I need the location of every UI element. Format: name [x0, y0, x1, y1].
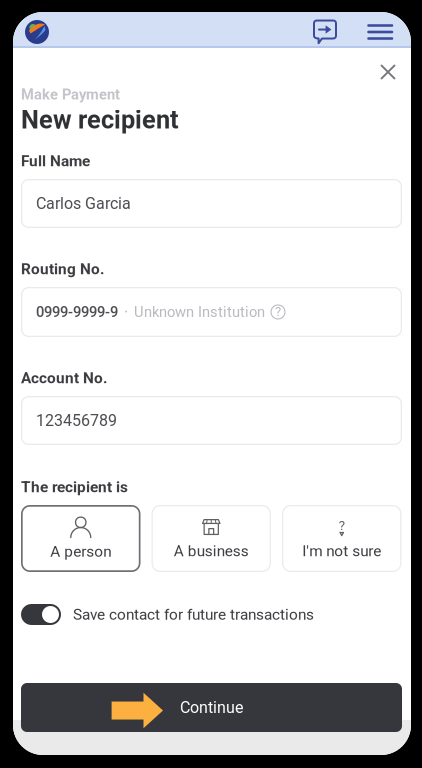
button[interactable]: Save contact for future transactions — [21, 604, 402, 625]
staticText: Carlos Garcia — [36, 194, 131, 213]
button[interactable]: Close — [373, 57, 403, 87]
staticText: I'm not sure — [302, 542, 381, 560]
staticText: Save contact for future transactions — [73, 605, 314, 623]
staticText: Account No. — [21, 369, 107, 387]
staticText: Unknown Institution — [134, 303, 265, 321]
button[interactable]: ? — [282, 505, 401, 572]
staticText: A business — [174, 542, 249, 560]
staticText: Full Name — [21, 152, 90, 170]
staticText: Routing No. — [21, 260, 104, 278]
staticText: New recipient — [21, 105, 179, 135]
button[interactable]: Continue — [21, 683, 402, 732]
staticText: · — [124, 303, 128, 321]
staticText: 123456789 — [36, 411, 117, 430]
button[interactable]: A business — [151, 505, 271, 572]
staticText: Make Payment — [21, 86, 120, 103]
staticText: ? — [275, 304, 281, 319]
button[interactable]: A person — [21, 505, 140, 572]
staticText: The recipient is — [21, 478, 128, 496]
staticText: A person — [50, 542, 111, 560]
staticText: ? — [339, 518, 345, 533]
staticText: 0999-9999-9 — [36, 303, 118, 321]
button[interactable]: Menu — [364, 16, 396, 48]
button[interactable]: Messages — [309, 16, 341, 48]
staticText: Continue — [180, 698, 243, 717]
